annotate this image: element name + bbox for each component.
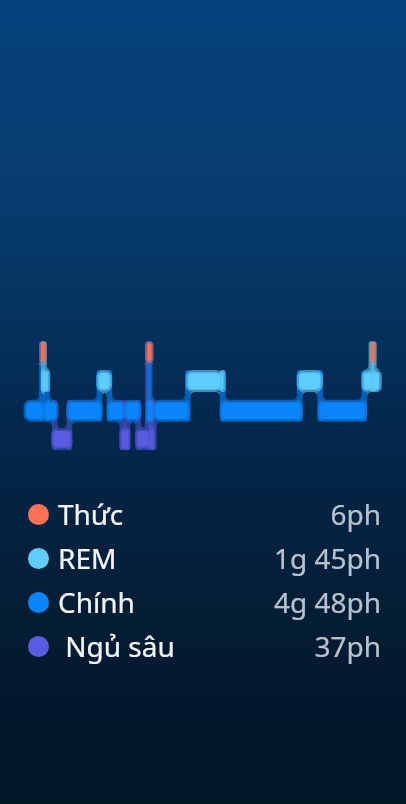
staticText: 1g 45ph (273, 539, 381, 577)
button[interactable]: Chính (28, 580, 381, 624)
staticText: Thức (58, 495, 124, 533)
staticText: 6ph (330, 495, 381, 533)
staticText: Ngủ sâu (58, 627, 175, 665)
button[interactable]: REM (28, 536, 381, 580)
staticText: REM (58, 539, 117, 577)
staticText: 37ph (314, 627, 381, 665)
button[interactable]: Thức (28, 492, 381, 536)
button[interactable]: Ngủ sâu (28, 624, 381, 668)
staticText: 4g 48ph (273, 583, 381, 621)
staticText: Chính (58, 583, 135, 621)
